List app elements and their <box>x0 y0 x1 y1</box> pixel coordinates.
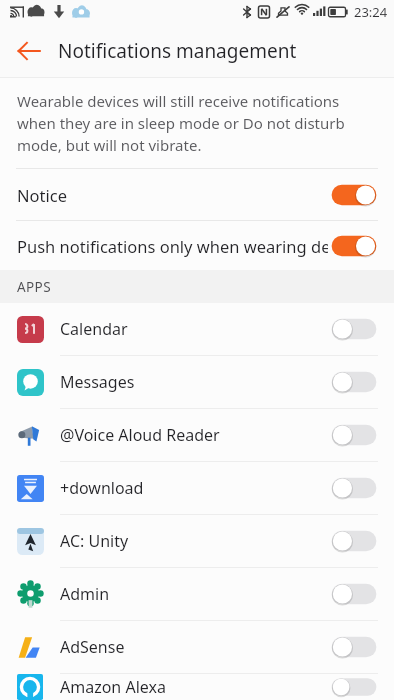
button[interactable]: Toggle on <box>328 231 380 261</box>
button[interactable]: Toggle off <box>328 579 380 609</box>
button[interactable]: Amazon Alexa <box>0 674 394 700</box>
button[interactable]: Admin <box>0 568 394 621</box>
button[interactable]: Toggle on <box>328 180 380 210</box>
staticText: Notice <box>17 184 328 206</box>
staticText: +download <box>60 477 328 499</box>
button[interactable]: AdSense <box>0 621 394 674</box>
staticText: @Voice Aloud Reader <box>60 424 328 446</box>
button[interactable]: Toggle off <box>328 367 380 397</box>
button[interactable]: Toggle off <box>328 420 380 450</box>
button[interactable]: Toggle off <box>328 526 380 556</box>
button[interactable]: Toggle off <box>328 674 380 700</box>
button[interactable]: Toggle off <box>328 314 380 344</box>
button[interactable]: +download <box>0 462 394 515</box>
staticText: Messages <box>60 371 328 393</box>
staticText: Amazon Alexa <box>60 676 328 698</box>
button[interactable]: Push notifications only when wearing dev… <box>0 221 394 270</box>
button[interactable]: Calendar <box>0 303 394 356</box>
staticText: AdSense <box>60 636 328 658</box>
staticText: Admin <box>60 583 328 605</box>
button[interactable]: Toggle off <box>328 473 380 503</box>
staticText: APPS <box>17 278 51 296</box>
button[interactable]: @Voice Aloud Reader <box>0 409 394 462</box>
staticText: Notifications management <box>58 38 297 64</box>
button[interactable]: Toggle off <box>328 632 380 662</box>
staticText: Calendar <box>60 318 328 340</box>
button[interactable]: Notice <box>0 169 394 220</box>
button[interactable]: AC: Unity <box>0 515 394 568</box>
staticText: Push notifications only when wearing dev… <box>17 235 328 257</box>
staticText: Wearable devices will still receive noti… <box>17 91 380 156</box>
staticText: 23:24 <box>354 3 388 21</box>
button[interactable]: Back <box>8 30 50 72</box>
staticText: AC: Unity <box>60 530 328 552</box>
button[interactable]: Messages <box>0 356 394 409</box>
